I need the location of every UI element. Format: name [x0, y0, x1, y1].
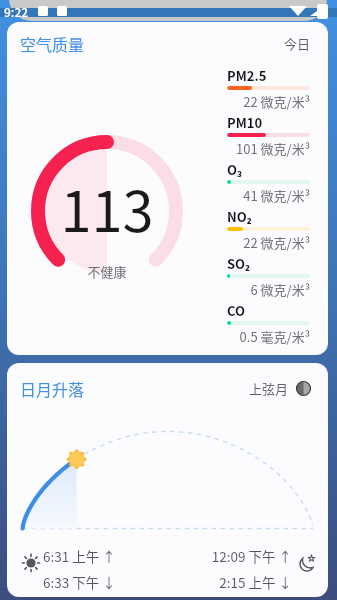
staticText: 12:09 下午 ↑ — [200, 546, 292, 566]
staticText: 101 微克/米³ — [227, 139, 310, 158]
staticText: 6:31 上午 ↑ — [43, 546, 116, 566]
button[interactable]: O₃ — [227, 160, 310, 201]
button[interactable]: PM2.5 — [227, 66, 310, 107]
staticText: 日月升落 — [20, 377, 85, 400]
other: Moonrise and moonset — [298, 555, 316, 573]
staticText: 22 微克/米³ — [227, 233, 310, 252]
staticText: NO₂ — [227, 207, 252, 226]
staticText: PM10 — [227, 113, 263, 132]
button[interactable]: NO₂ — [227, 207, 310, 248]
staticText: CO — [227, 301, 246, 320]
button[interactable]: CO — [227, 301, 310, 342]
other: Sunrise and sunset — [22, 554, 40, 572]
staticText: SO₂ — [227, 254, 251, 273]
staticText: 113 — [47, 167, 167, 248]
staticText: 9:22 — [4, 3, 29, 20]
staticText: 上弦月 — [249, 379, 289, 398]
staticText: 2:15 上午 ↓ — [200, 572, 292, 592]
button[interactable]: SO₂ — [227, 254, 310, 295]
button[interactable]: PM10 — [227, 113, 310, 154]
button[interactable]: 日月升落 — [7, 363, 328, 597]
staticText: O₃ — [227, 160, 242, 179]
staticText: 22 微克/米³ — [227, 92, 310, 111]
staticText: 今日 — [284, 34, 311, 53]
other: Moon phase — [296, 381, 311, 396]
staticText: 空气质量 — [20, 32, 85, 55]
staticText: 41 微克/米³ — [227, 186, 310, 205]
staticText: 6 微克/米³ — [227, 280, 310, 299]
staticText: 0.5 毫克/米³ — [227, 327, 310, 346]
staticText: PM2.5 — [227, 66, 267, 85]
staticText: 不健康 — [57, 262, 157, 281]
button[interactable]: 空气质量 — [7, 22, 328, 355]
staticText: 6:33 下午 ↓ — [43, 572, 116, 592]
